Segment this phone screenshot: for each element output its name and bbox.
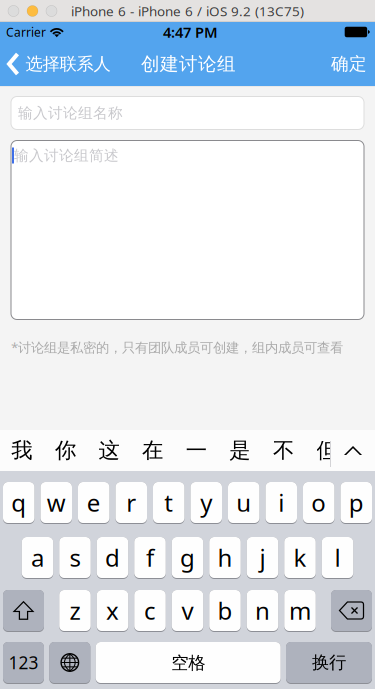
staticText: w xyxy=(47,487,66,518)
button[interactable]: 输入讨论组简述 xyxy=(11,140,364,319)
staticText: z xyxy=(69,595,80,626)
staticText: e xyxy=(87,487,101,519)
button[interactable]: j xyxy=(247,537,278,579)
button[interactable]: 在 xyxy=(131,430,174,471)
button[interactable]: 换行 xyxy=(286,642,372,684)
staticText: Carrier xyxy=(6,24,46,40)
staticText: h xyxy=(217,542,232,574)
staticText: m xyxy=(289,595,311,626)
button[interactable]: 你 xyxy=(44,430,87,471)
staticText: w xyxy=(47,487,66,519)
staticText: iPhone 6 - iPhone 6 / iOS 9.2 (13C75) xyxy=(71,2,304,20)
staticText: h xyxy=(217,542,232,573)
staticText: j xyxy=(259,542,265,574)
staticText: y xyxy=(200,487,212,518)
button[interactable]: c xyxy=(134,590,166,632)
staticText: z xyxy=(69,595,80,627)
staticText: 换行 xyxy=(312,652,346,673)
button[interactable]: m xyxy=(284,590,316,632)
button[interactable]: u xyxy=(228,482,259,524)
staticText: g xyxy=(180,542,195,574)
button[interactable]: 不 xyxy=(262,430,305,471)
staticText: 123 xyxy=(8,651,38,674)
button[interactable]: 是 xyxy=(218,430,262,471)
button[interactable]: 选择联系人 xyxy=(0,42,118,86)
staticText: t xyxy=(164,487,173,518)
staticText: i xyxy=(278,487,284,519)
button[interactable]: w xyxy=(40,482,72,524)
button[interactable]: e xyxy=(78,482,109,524)
staticText: 输入讨论组名称 xyxy=(18,104,123,122)
button[interactable]: s xyxy=(59,537,91,579)
staticText: u xyxy=(236,487,251,519)
button[interactable]: g xyxy=(172,537,203,579)
button[interactable]: y xyxy=(190,482,222,524)
button[interactable]: 确定 xyxy=(317,42,375,86)
button[interactable]: f xyxy=(134,537,166,579)
button[interactable]: d xyxy=(97,537,128,579)
staticText: r xyxy=(126,487,136,519)
button[interactable]: 空格 xyxy=(96,642,281,684)
staticText: 一 xyxy=(186,437,207,464)
staticText: 我 xyxy=(11,437,32,464)
staticText: k xyxy=(293,542,306,574)
button[interactable]: q xyxy=(3,482,34,524)
button[interactable]: p xyxy=(340,482,372,524)
button[interactable]: h xyxy=(209,537,241,579)
staticText: 换行 xyxy=(312,652,346,674)
staticText: 空格 xyxy=(171,652,205,674)
staticText: b xyxy=(217,595,232,627)
staticText: x xyxy=(106,595,119,626)
staticText: p xyxy=(349,487,364,519)
button[interactable]: 我 xyxy=(0,430,44,471)
staticText: t xyxy=(164,487,173,519)
button[interactable]: 这 xyxy=(87,430,131,471)
staticText: 不 xyxy=(273,437,294,464)
staticText: i xyxy=(278,487,284,518)
staticText: n xyxy=(255,595,270,626)
button[interactable]: Delete xyxy=(331,590,372,632)
staticText: v xyxy=(181,595,193,626)
button[interactable]: 一 xyxy=(174,430,218,471)
staticText: y xyxy=(200,487,212,519)
button[interactable]: 切换输入法 xyxy=(49,642,90,684)
button[interactable]: t xyxy=(153,482,184,524)
staticText: n xyxy=(255,595,270,627)
button[interactable]: r xyxy=(115,482,147,524)
staticText: l xyxy=(334,542,340,573)
button[interactable]: a xyxy=(22,537,53,579)
button[interactable]: 展开候选词 xyxy=(331,430,375,471)
button[interactable]: 数字键盘 xyxy=(3,642,44,684)
button[interactable]: 但 xyxy=(305,430,349,471)
staticText: g xyxy=(180,542,195,573)
staticText: d xyxy=(105,542,120,574)
button[interactable]: x xyxy=(97,590,128,632)
staticText: 4:47 PM xyxy=(163,22,218,42)
staticText: 是 xyxy=(229,437,250,464)
staticText: 你 xyxy=(55,437,76,464)
staticText: f xyxy=(146,542,154,573)
staticText: l xyxy=(334,542,340,574)
staticText: 确定 xyxy=(331,53,367,75)
button[interactable]: Shift xyxy=(3,590,44,632)
staticText: v xyxy=(181,595,193,627)
staticText: b xyxy=(217,595,232,626)
button[interactable]: i xyxy=(265,482,297,524)
button[interactable]: b xyxy=(209,590,241,632)
button[interactable]: 输入讨论组名称 xyxy=(11,96,364,129)
staticText: *讨论组是私密的，只有团队成员可创建，组内成员可查看 xyxy=(11,338,343,356)
button[interactable]: v xyxy=(172,590,203,632)
button[interactable]: l xyxy=(322,537,353,579)
button[interactable]: n xyxy=(247,590,278,632)
staticText: 输入讨论组简述 xyxy=(14,146,119,164)
staticText: a xyxy=(31,542,44,574)
button[interactable]: k xyxy=(284,537,316,579)
staticText: 选择联系人 xyxy=(25,53,110,75)
staticText: q xyxy=(11,487,26,519)
button[interactable]: o xyxy=(303,482,334,524)
staticText: s xyxy=(69,542,80,573)
staticText: d xyxy=(105,542,120,573)
button[interactable]: z xyxy=(59,590,91,632)
staticText: a xyxy=(31,542,44,573)
staticText: 在 xyxy=(142,437,163,464)
